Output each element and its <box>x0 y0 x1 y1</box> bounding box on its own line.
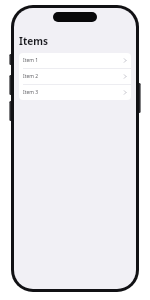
button[interactable]: Item 1 <box>19 53 131 68</box>
other: Open Item 1 <box>123 57 127 64</box>
staticText: Items <box>19 34 48 48</box>
button[interactable]: Item 2 <box>19 69 131 84</box>
other: Open Item 3 <box>123 89 127 96</box>
staticText: Item 1 <box>23 57 39 64</box>
staticText: Item 2 <box>23 73 39 80</box>
staticText: Item 3 <box>23 89 39 96</box>
button[interactable]: Item 3 <box>19 85 131 100</box>
other: Open Item 2 <box>123 73 127 80</box>
